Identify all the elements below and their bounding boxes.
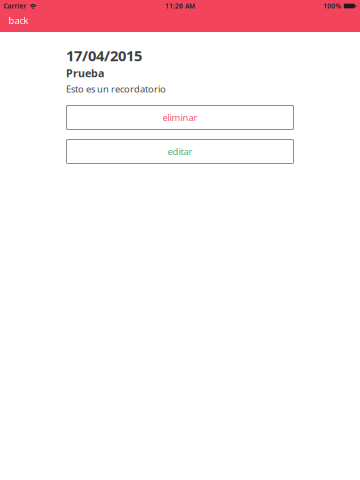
- staticText: eliminar: [162, 111, 197, 124]
- button[interactable]: eliminar: [66, 105, 294, 130]
- staticText: Esto es un recordatorio: [66, 83, 166, 95]
- button[interactable]: back: [0, 12, 36, 32]
- staticText: editar: [167, 145, 192, 158]
- staticText: Prueba: [66, 66, 104, 80]
- staticText: 100%: [323, 2, 341, 10]
- staticText: 17/04/2015: [66, 46, 142, 65]
- staticText: back: [9, 14, 29, 27]
- staticText: 11:26 AM: [165, 2, 195, 10]
- button[interactable]: editar: [66, 139, 294, 164]
- staticText: Carrier: [3, 2, 26, 10]
